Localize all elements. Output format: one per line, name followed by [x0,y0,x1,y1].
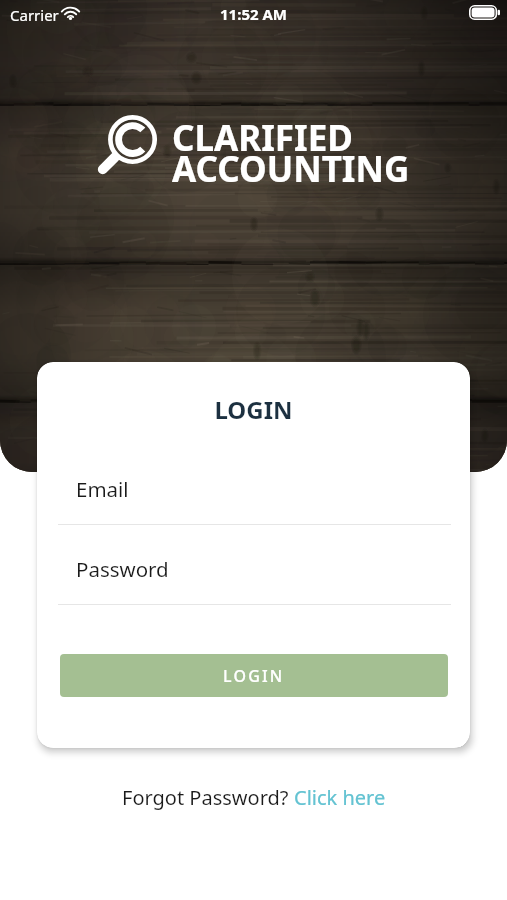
button[interactable]: Password [58,540,451,605]
staticText: Email [76,475,129,503]
button[interactable]: LOGIN [60,654,448,697]
staticText: LOGIN [37,393,470,426]
staticText: Forgot Password? [122,784,294,811]
staticText: CLARIFIED [172,114,353,162]
other: Battery full [469,5,501,20]
staticText: LOGIN [223,665,285,687]
button[interactable]: Click here [294,784,386,811]
staticText: Password [76,555,169,583]
other: Wifi signal [61,6,80,20]
staticText: 11:52 AM [0,4,507,24]
staticText: Click here [294,784,386,811]
button[interactable]: Email [58,460,451,525]
staticText: ACCOUNTING [172,145,410,193]
staticText: Carrier [10,5,59,25]
